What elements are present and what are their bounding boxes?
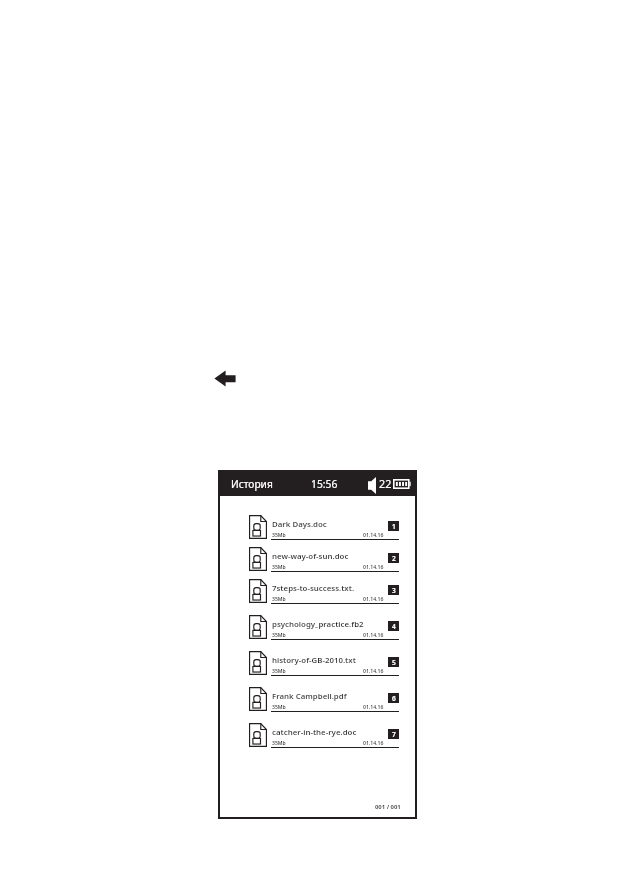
button[interactable]: 7steps-to-success.txt. <box>220 576 415 606</box>
staticText: 15:56 <box>311 477 338 491</box>
staticText: 1 <box>392 522 396 531</box>
button[interactable]: Frank Campbell.pdf <box>220 684 415 714</box>
staticText: 7 <box>392 730 396 739</box>
staticText: 7steps-to-success.txt. <box>272 583 355 594</box>
button[interactable]: psychology_practice.fb2 <box>220 612 415 642</box>
staticText: 35Mb <box>272 596 286 603</box>
other: Battery <box>393 479 411 489</box>
staticText: 01.14.16 <box>363 740 384 747</box>
staticText: 6 <box>392 694 396 703</box>
staticText: 3 <box>392 586 396 595</box>
staticText: 35Mb <box>272 532 286 539</box>
button[interactable]: new-way-of-sun.doc <box>220 544 415 574</box>
staticText: Frank Campbell.pdf <box>272 691 347 702</box>
other: Volume <box>368 477 376 494</box>
staticText: 35Mb <box>272 564 286 571</box>
staticText: history-of-GB-2010.txt <box>272 655 356 666</box>
staticText: 35Mb <box>272 668 286 675</box>
button[interactable]: history-of-GB-2010.txt <box>220 648 415 678</box>
staticText: 35Mb <box>272 632 286 639</box>
staticText: 22 <box>379 476 392 491</box>
staticText: 01.14.16 <box>363 596 384 603</box>
staticText: 01.14.16 <box>363 668 384 675</box>
staticText: 35Mb <box>272 704 286 711</box>
button[interactable]: Back <box>214 370 236 387</box>
staticText: 01.14.16 <box>363 632 384 639</box>
staticText: История <box>231 477 273 491</box>
button[interactable]: Dark Days.doc <box>220 512 415 542</box>
button[interactable]: catcher-in-the-rye.doc <box>220 720 415 750</box>
staticText: psychology_practice.fb2 <box>272 619 364 630</box>
staticText: 01.14.16 <box>363 704 384 711</box>
staticText: Dark Days.doc <box>272 519 327 530</box>
staticText: 001 / 001 <box>375 803 401 811</box>
staticText: 2 <box>392 554 396 563</box>
staticText: 01.14.16 <box>363 532 384 539</box>
staticText: 01.14.16 <box>363 564 384 571</box>
staticText: 35Mb <box>272 740 286 747</box>
staticText: 5 <box>392 658 396 667</box>
staticText: catcher-in-the-rye.doc <box>272 727 357 738</box>
staticText: 4 <box>392 622 396 631</box>
staticText: new-way-of-sun.doc <box>272 551 349 562</box>
